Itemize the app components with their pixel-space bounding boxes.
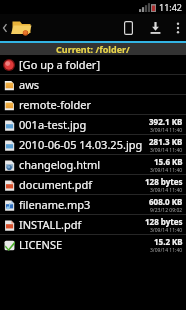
button[interactable]: Download (141, 17, 170, 38)
button[interactable]: Storage (116, 17, 141, 39)
button[interactable]: filename.mp3 (0, 195, 186, 214)
button[interactable]: 001a-test.jpg (0, 115, 186, 134)
staticText: 128 bytes (145, 216, 183, 227)
button[interactable]: Current: /folder/ (0, 43, 186, 55)
staticText: 9/23/12 09:02 (150, 207, 183, 214)
staticText: 128 bytes (145, 176, 183, 187)
staticText: [Go up a folder] (19, 57, 183, 72)
staticText: changelog.html (19, 157, 150, 172)
staticText: 3/09/14 11:40 (150, 127, 183, 134)
staticText: 281.3 KB (149, 136, 183, 147)
button[interactable]: remote-folder (0, 95, 186, 114)
button[interactable]: aws (0, 75, 186, 94)
staticText: aws (19, 77, 183, 92)
button[interactable]: [Go up a folder] (0, 55, 186, 74)
staticText: 11:42 (159, 1, 183, 13)
staticText: 3/09/14 11:40 (150, 167, 183, 174)
staticText: 3/09/14 11:40 (150, 147, 183, 154)
button[interactable]: Up (0, 15, 34, 40)
button[interactable]: LICENSE (0, 235, 186, 254)
staticText: 392.1 KB (149, 116, 183, 127)
staticText: 15.2 KB (154, 236, 183, 247)
staticText: filename.mp3 (19, 197, 149, 212)
button[interactable]: More options (170, 17, 186, 39)
button[interactable]: document.pdf (0, 175, 186, 194)
staticText: 001a-test.jpg (19, 117, 149, 132)
staticText: 15.6 KB (154, 156, 183, 167)
staticText: INSTALL.pdf (19, 217, 145, 232)
staticText: LICENSE (19, 237, 150, 252)
staticText: 2010-06-05 14.03.25.jpg (19, 137, 149, 152)
staticText: 3/09/14 11:40 (150, 227, 183, 234)
staticText: 3/09/14 11:40 (150, 187, 183, 194)
staticText: Current: /folder/ (56, 43, 130, 55)
staticText: 3/09/14 11:40 (150, 247, 183, 254)
button[interactable]: 2010-06-05 14.03.25.jpg (0, 135, 186, 154)
button[interactable]: changelog.html (0, 155, 186, 174)
button[interactable]: INSTALL.pdf (0, 215, 186, 234)
staticText: document.pdf (19, 177, 145, 192)
staticText: 608.0 KB (149, 196, 183, 207)
staticText: remote-folder (19, 97, 183, 112)
